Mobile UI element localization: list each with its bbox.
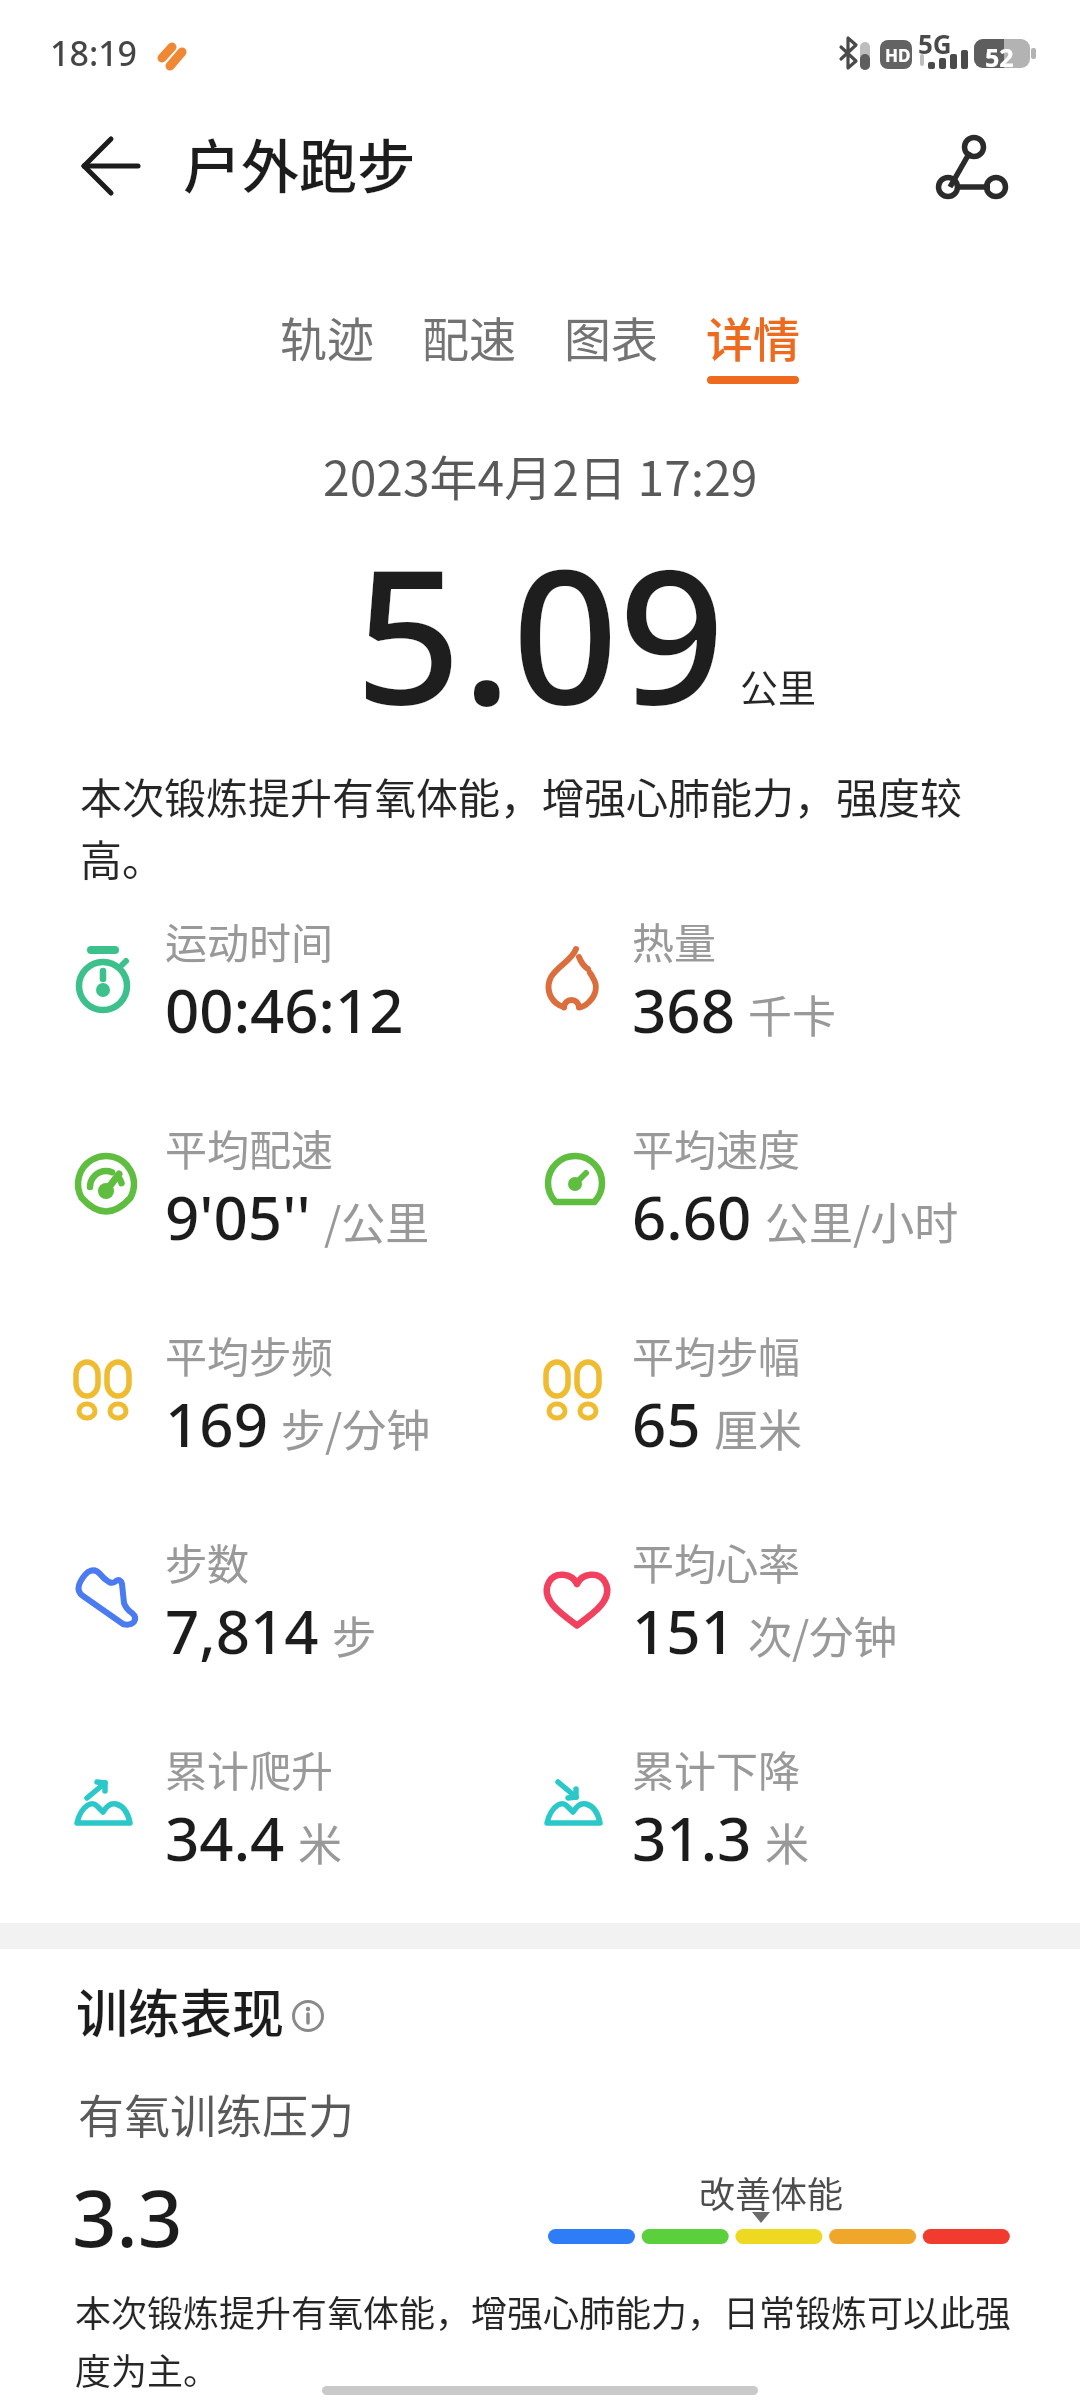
button[interactable] [920, 125, 1030, 211]
staticText: 169 [165, 1383, 268, 1465]
staticText: 步/分钟 [281, 1396, 431, 1460]
staticText: 轨迹 [280, 302, 374, 370]
staticText: 34.4 [165, 1797, 285, 1879]
staticText: 18:19 [50, 30, 138, 76]
staticText: 步 [332, 1603, 376, 1667]
button[interactable] [74, 1742, 204, 1872]
staticText: 00:46:12 [165, 969, 404, 1051]
button[interactable]: 轨迹 [280, 302, 374, 376]
button[interactable]: 详情 [706, 302, 800, 384]
button[interactable] [74, 914, 204, 1044]
staticText: 7,814 [165, 1590, 319, 1672]
staticText: 5.09 [355, 505, 725, 758]
staticText: 运动时间 [165, 910, 334, 971]
button[interactable]: 配速 [422, 302, 516, 376]
button[interactable] [70, 1968, 330, 2038]
staticText: 本次锻炼提升有氧体能，增强心肺能力，强度较 高。 [80, 765, 963, 888]
staticText: 31.3 [632, 1797, 752, 1879]
button[interactable] [544, 1328, 674, 1458]
staticText: 平均步频 [165, 1324, 334, 1385]
staticText: 2023年4月2日 17:29 [323, 440, 758, 510]
staticText: 有氧训练压力 [78, 2080, 354, 2147]
button[interactable] [60, 130, 160, 202]
button[interactable] [544, 1535, 674, 1665]
staticText: 米 [298, 1810, 342, 1874]
staticText: 本次锻炼提升有氧体能，增强心肺能力，日常锻炼可以此强 度为主。 [75, 2285, 1012, 2396]
staticText: 3.3 [72, 2164, 183, 2270]
staticText: 次/分钟 [748, 1603, 898, 1667]
staticText: 训练表现 [76, 1973, 285, 2048]
staticText: 厘米 [714, 1396, 802, 1460]
button[interactable]: 图表 [564, 302, 658, 376]
staticText: 5G [918, 26, 952, 61]
staticText: 平均步幅 [632, 1324, 801, 1385]
staticText: 151 [632, 1590, 735, 1672]
staticText: 改善体能 [699, 2166, 844, 2218]
staticText: HD [885, 44, 911, 67]
staticText: 平均配速 [165, 1117, 334, 1178]
staticText: /公里 [324, 1189, 430, 1253]
button[interactable] [544, 1121, 674, 1251]
staticText: 6.60 [632, 1176, 752, 1258]
staticText: 千卡 [748, 982, 836, 1046]
button[interactable] [544, 1742, 674, 1872]
staticText: 图表 [564, 302, 658, 370]
staticText: 户外跑步 [183, 121, 416, 205]
button[interactable] [74, 1535, 204, 1665]
staticText: 米 [765, 1810, 809, 1874]
staticText: 公里/小时 [765, 1189, 959, 1253]
staticText: 累计下降 [632, 1738, 801, 1799]
staticText: 配速 [422, 302, 516, 370]
staticText: 平均心率 [632, 1531, 801, 1592]
staticText: 步数 [165, 1531, 250, 1592]
button[interactable] [74, 1121, 204, 1251]
staticText: 累计爬升 [165, 1738, 334, 1799]
staticText: 详情 [706, 302, 800, 370]
staticText: 52 [985, 40, 1014, 74]
button[interactable] [74, 1328, 204, 1458]
staticText: 368 [632, 969, 735, 1051]
staticText: 热量 [632, 910, 717, 971]
staticText: 65 [632, 1383, 701, 1465]
staticText: 9'05'' [165, 1176, 311, 1258]
button[interactable] [544, 914, 674, 1044]
staticText: 公里 [740, 658, 817, 713]
staticText: 平均速度 [632, 1117, 801, 1178]
